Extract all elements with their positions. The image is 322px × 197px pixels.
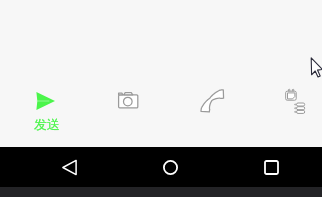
- button[interactable]: Home: [150, 147, 190, 187]
- button[interactable]: Camera: [110, 82, 146, 118]
- button[interactable]: 发送: [25, 86, 65, 138]
- staticText: 发送: [34, 116, 60, 132]
- button[interactable]: Recents: [251, 147, 291, 187]
- button[interactable]: Call: [194, 83, 230, 119]
- button[interactable]: Back: [49, 147, 89, 187]
- button[interactable]: Device info: [277, 82, 313, 118]
